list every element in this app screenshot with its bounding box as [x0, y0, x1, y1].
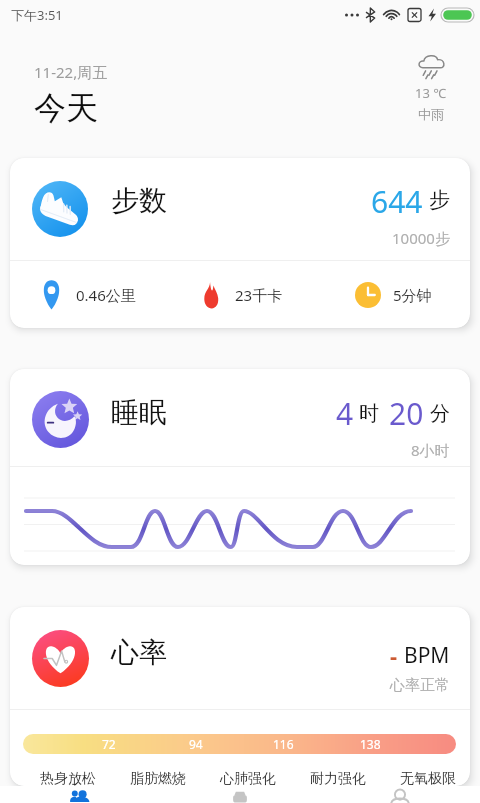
staticText: 0.46公里 [76, 285, 136, 305]
button[interactable]: 0.46公里 [10, 279, 164, 310]
staticText: BPM [404, 641, 450, 670]
staticText: 心肺强化 [220, 770, 276, 786]
staticText: 644 [371, 181, 423, 222]
button[interactable]: 23千卡 [164, 281, 317, 309]
button[interactable]: 健康 [0, 786, 160, 803]
button[interactable]: 我的 [320, 786, 480, 803]
staticText: 13 ℃ [415, 84, 447, 102]
staticText: 步 [429, 187, 450, 213]
staticText: 耐力强化 [310, 770, 366, 786]
staticText: 8小时 [411, 440, 450, 460]
button[interactable]: 5分钟 [317, 282, 470, 308]
staticText: - [390, 640, 398, 670]
staticText: 无氧极限 [400, 770, 456, 786]
staticText: 步数 [111, 183, 167, 218]
button[interactable]: 设备 [160, 786, 320, 803]
staticText: 今天 [34, 88, 98, 128]
staticText: 10000步 [392, 228, 450, 248]
staticText: 94 [189, 736, 203, 752]
staticText: 4 [336, 393, 354, 434]
staticText: 11-22,周五 [34, 62, 108, 82]
staticText: 心率 [111, 635, 167, 670]
staticText: 5分钟 [393, 285, 432, 305]
staticText: 分 [430, 401, 450, 426]
staticText: 23千卡 [235, 285, 283, 305]
staticText: 睡眠 [111, 395, 167, 430]
staticText: 时 [359, 401, 379, 426]
staticText: 中雨 [418, 106, 444, 122]
staticText: 脂肪燃烧 [130, 770, 186, 786]
staticText: 热身放松 [40, 770, 96, 786]
staticText: 72 [102, 736, 116, 752]
staticText: 20 [389, 393, 424, 434]
staticText: 心率正常 [390, 676, 450, 695]
staticText: 138 [360, 736, 381, 752]
staticText: 116 [273, 736, 294, 752]
staticText: 下午3:51 [11, 6, 63, 24]
